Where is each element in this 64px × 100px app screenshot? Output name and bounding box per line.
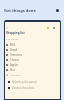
button[interactable]: Bread [4,47,61,52]
button[interactable]: Booked the tickets [4,85,61,91]
staticText: Booked the tickets [12,86,35,90]
staticText: Bread [10,48,18,52]
button[interactable]: Cheese [4,57,61,62]
button[interactable]: Rice [4,67,61,72]
staticText: Picked up the parcel [12,80,37,84]
staticText: Shopping list [6,31,25,35]
button[interactable]: Apples [4,62,61,67]
button[interactable]: Picked up the parcel [4,79,61,85]
staticText: Get things done [4,8,36,13]
staticText: Cheese [10,58,19,62]
button[interactable]: Milk [4,42,61,47]
staticText: Add item [10,73,21,76]
staticText: Milk [10,43,16,47]
staticText: Apples [10,63,19,67]
button[interactable]: Tomatoes [4,52,61,57]
staticText: Rice [10,68,15,72]
staticText: Tomatoes [10,53,22,57]
button[interactable]: Profile [56,9,59,12]
staticText: 4 of 8 done [6,37,19,40]
button[interactable]: Add item [4,72,61,77]
